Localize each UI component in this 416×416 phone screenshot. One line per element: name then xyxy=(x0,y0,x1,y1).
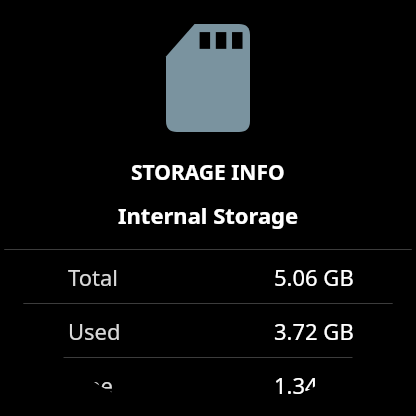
other: Internal storage xyxy=(166,24,250,132)
staticText: 1.34 GB xyxy=(274,370,354,400)
staticText: Total xyxy=(68,262,118,292)
button[interactable]: Free xyxy=(0,358,416,411)
staticText: Used xyxy=(68,316,121,346)
staticText: Internal Storage xyxy=(118,200,299,230)
staticText: 5.06 GB xyxy=(274,262,354,292)
button[interactable]: Used xyxy=(0,304,416,357)
staticText: Free xyxy=(68,370,113,400)
button[interactable]: Total xyxy=(0,250,416,303)
staticText: STORAGE INFO xyxy=(131,158,285,187)
staticText: 3.72 GB xyxy=(274,316,354,346)
